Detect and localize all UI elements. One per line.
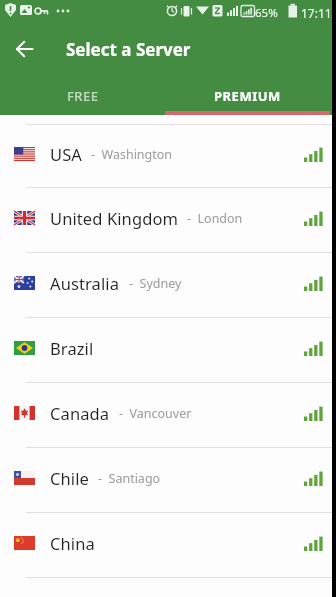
button[interactable]: Brazil: [0, 318, 336, 382]
button[interactable]: FREE: [0, 77, 165, 115]
button[interactable]: PREMIUM: [165, 77, 330, 115]
staticText: - London: [187, 210, 243, 227]
staticText: 17:11: [301, 5, 332, 21]
staticText: China: [50, 532, 95, 554]
button[interactable]: Australia: [0, 253, 336, 317]
staticText: - Sydney: [129, 275, 182, 292]
staticText: Brazil: [50, 337, 94, 359]
staticText: PREMIUM: [214, 87, 281, 105]
button[interactable]: Chile: [0, 448, 336, 512]
button[interactable]: USA: [0, 125, 336, 187]
button[interactable]: China: [0, 513, 336, 577]
staticText: FREE: [67, 87, 99, 105]
staticText: - Washington: [91, 146, 173, 163]
staticText: United Kingdom: [50, 207, 178, 229]
staticText: Select a Server: [66, 38, 191, 61]
staticText: Australia: [50, 272, 120, 294]
staticText: - Santiago: [98, 470, 161, 487]
staticText: Canada: [50, 402, 110, 424]
staticText: 65%: [255, 5, 278, 21]
staticText: USA: [50, 143, 82, 165]
staticText: - Vancouver: [119, 405, 192, 422]
button[interactable]: United Kingdom: [0, 188, 336, 252]
button[interactable]: Canada: [0, 383, 336, 447]
button[interactable]: [8, 33, 40, 65]
staticText: Chile: [50, 467, 89, 489]
